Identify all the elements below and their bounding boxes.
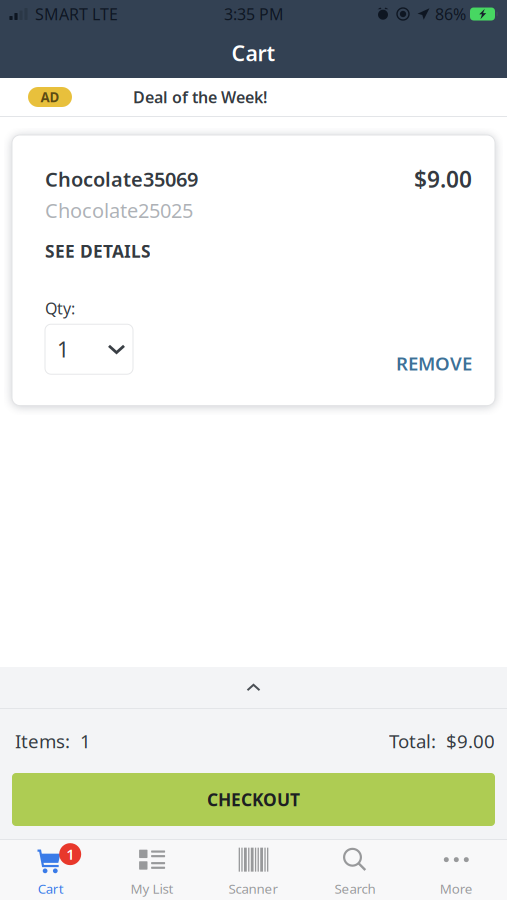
staticText: Cart	[231, 39, 275, 67]
staticText: SEE DETAILS	[45, 240, 151, 263]
staticText: Items: 1	[15, 729, 91, 753]
staticText: REMOVE	[396, 351, 472, 376]
button[interactable]: Search	[304, 840, 406, 900]
staticText: Qty:	[45, 298, 75, 319]
staticText: Search	[334, 880, 375, 897]
staticText: Deal of the Week!	[133, 86, 267, 108]
button[interactable]: My List	[101, 840, 203, 900]
staticText: My List	[131, 880, 174, 897]
staticText: More	[440, 880, 473, 897]
button[interactable]: CHECKOUT	[12, 773, 495, 826]
staticText: Cart	[38, 880, 64, 897]
staticText: 1	[57, 335, 69, 363]
staticText: AD	[40, 88, 59, 106]
staticText: 1	[66, 844, 74, 864]
staticText: 3:35 PM	[224, 3, 284, 25]
staticText: $9.00	[414, 164, 472, 194]
staticText: Chocolate25025	[45, 197, 193, 224]
button[interactable]: Scanner	[203, 840, 304, 900]
staticText: 86%	[435, 3, 466, 25]
staticText: CHECKOUT	[207, 788, 300, 811]
button[interactable]: AD	[0, 78, 507, 116]
staticText: Scanner	[228, 880, 278, 897]
button[interactable]: Expand summary	[0, 667, 507, 708]
staticText: SMART LTE	[35, 3, 118, 25]
button[interactable]: 1	[45, 324, 133, 374]
staticText: Chocolate35069	[45, 166, 198, 192]
button[interactable]: REMOVE	[396, 323, 472, 376]
button[interactable]: SEE DETAILS	[45, 224, 151, 263]
button[interactable]: 1	[0, 840, 101, 900]
staticText: Total: $9.00	[389, 729, 495, 753]
button[interactable]: More	[406, 840, 507, 900]
